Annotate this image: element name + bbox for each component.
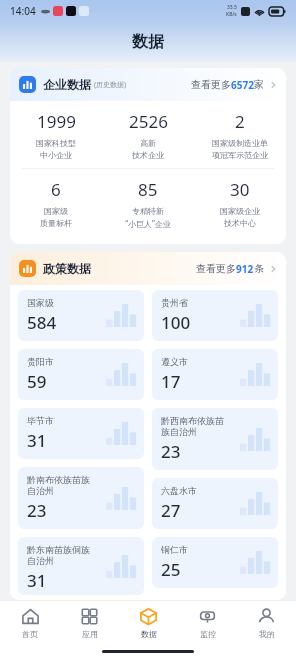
staticText: 1999 bbox=[37, 110, 76, 133]
button[interactable]: 毕节市 bbox=[18, 408, 144, 459]
staticText: 黔西南布依族苗 bbox=[161, 415, 224, 426]
staticText: 查看更多 bbox=[196, 262, 236, 275]
staticText: 27 bbox=[161, 499, 181, 522]
staticText: 铜仁市 bbox=[161, 544, 188, 555]
staticText: 2526 bbox=[129, 110, 168, 133]
staticText: 首页 bbox=[22, 629, 38, 639]
button[interactable]: 政策数据 bbox=[10, 252, 286, 285]
staticText: 国家级 bbox=[27, 297, 54, 308]
staticText: 条 bbox=[254, 262, 264, 275]
staticText: 遵义市 bbox=[161, 356, 188, 367]
staticText: 专精特新 bbox=[132, 206, 164, 216]
staticText: 数据 bbox=[141, 629, 157, 639]
staticText: 应用 bbox=[82, 629, 98, 639]
staticText: 31 bbox=[27, 429, 47, 452]
staticText: 国家级 bbox=[44, 206, 68, 216]
staticText: 技术企业 bbox=[132, 150, 164, 160]
staticText: 23 bbox=[161, 440, 181, 463]
staticText: 6572 bbox=[231, 78, 254, 92]
staticText: (历史数据) bbox=[94, 80, 127, 90]
staticText: 33.5 bbox=[227, 4, 237, 11]
button[interactable]: 贵州省 bbox=[152, 290, 278, 341]
staticText: 30 bbox=[230, 178, 250, 201]
staticText: 监控 bbox=[200, 629, 216, 639]
staticText: 14:04 bbox=[10, 4, 36, 18]
staticText: 自治州 bbox=[27, 555, 54, 566]
button[interactable]: 85 bbox=[102, 178, 194, 229]
staticText: 家 bbox=[254, 78, 264, 91]
staticText: 85 bbox=[138, 178, 158, 201]
button[interactable]: 2526 bbox=[102, 110, 194, 160]
staticText: 贵阳市 bbox=[27, 356, 54, 367]
staticText: 31 bbox=[27, 569, 47, 588]
staticText: 584 bbox=[27, 311, 57, 334]
button[interactable]: 30 bbox=[194, 178, 286, 228]
button[interactable]: 黔东南苗族侗族 bbox=[18, 537, 144, 595]
staticText: 2 bbox=[235, 110, 245, 133]
button[interactable]: 监控 bbox=[178, 601, 237, 645]
button[interactable]: 应用 bbox=[60, 601, 119, 645]
other: 更多 bbox=[269, 265, 277, 273]
staticText: KB/s bbox=[226, 11, 237, 18]
staticText: 毕节市 bbox=[27, 415, 54, 426]
button[interactable]: 6 bbox=[10, 178, 102, 228]
button[interactable]: 六盘水市 bbox=[152, 478, 278, 529]
button[interactable]: 1999 bbox=[10, 110, 102, 160]
staticText: 17 bbox=[161, 370, 181, 393]
button[interactable]: 企业数据 bbox=[10, 68, 286, 101]
staticText: 项冠军示范企业 bbox=[212, 150, 268, 160]
button[interactable]: 2 bbox=[194, 110, 286, 160]
staticText: 59 bbox=[27, 370, 47, 393]
staticText: 我的 bbox=[259, 629, 275, 639]
staticText: 黔东南苗族侗族 bbox=[27, 544, 90, 555]
staticText: “小巨人”企业 bbox=[125, 218, 171, 229]
staticText: 自治州 bbox=[27, 485, 54, 496]
staticText: 贵州省 bbox=[161, 297, 188, 308]
staticText: 质量标杆 bbox=[40, 218, 72, 228]
staticText: 查看更多 bbox=[191, 78, 231, 91]
staticText: 族自治州 bbox=[161, 426, 197, 437]
other: 更多 bbox=[269, 81, 277, 89]
button[interactable]: 遵义市 bbox=[152, 349, 278, 400]
staticText: 912 bbox=[236, 262, 254, 276]
staticText: 国家科技型 bbox=[36, 138, 76, 148]
staticText: 25 bbox=[161, 558, 181, 581]
button[interactable]: 贵阳市 bbox=[18, 349, 144, 400]
staticText: 中小企业 bbox=[40, 150, 72, 160]
staticText: 国家级制造业单 bbox=[212, 138, 268, 148]
button[interactable]: 我的 bbox=[237, 601, 296, 645]
staticText: 6 bbox=[51, 178, 61, 201]
button[interactable]: 数据 bbox=[119, 601, 178, 645]
staticText: 数据 bbox=[132, 32, 164, 52]
staticText: 高新 bbox=[140, 138, 156, 148]
staticText: 六盘水市 bbox=[161, 485, 197, 496]
staticText: 23 bbox=[27, 499, 47, 522]
staticText: 政策数据 bbox=[43, 261, 91, 276]
staticText: 企业数据 bbox=[43, 77, 91, 92]
button[interactable]: 黔南布依族苗族 bbox=[18, 467, 144, 529]
staticText: 黔南布依族苗族 bbox=[27, 474, 90, 485]
staticText: 技术中心 bbox=[224, 218, 256, 228]
button[interactable]: 黔西南布依族苗 bbox=[152, 408, 278, 470]
button[interactable]: 铜仁市 bbox=[152, 537, 278, 588]
button[interactable]: 首页 bbox=[0, 601, 60, 645]
button[interactable]: 国家级 bbox=[18, 290, 144, 341]
staticText: 100 bbox=[161, 311, 191, 334]
staticText: 国家级企业 bbox=[220, 206, 260, 216]
